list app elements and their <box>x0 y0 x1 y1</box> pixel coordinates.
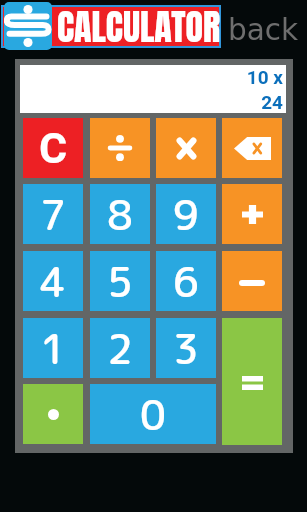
staticText: 0 <box>140 386 166 443</box>
staticText: 10 x <box>246 66 283 88</box>
button[interactable]: 0 <box>90 384 216 444</box>
button[interactable]: Divide <box>90 118 150 178</box>
staticText: 4 <box>40 253 66 310</box>
button[interactable]: 5 <box>90 251 150 311</box>
staticText: 1 <box>40 320 66 377</box>
staticText: CALCULATOR <box>57 0 221 54</box>
staticText: 6 <box>173 253 199 310</box>
staticText: 5 <box>107 253 133 310</box>
button[interactable]: 9 <box>156 184 216 244</box>
button[interactable]: 6 <box>156 251 216 311</box>
staticText: 2 <box>107 320 133 377</box>
button[interactable]: Minus <box>222 251 282 311</box>
button[interactable]: Backspace <box>222 118 282 178</box>
button[interactable]: Multiply <box>156 118 216 178</box>
button[interactable]: 1 <box>23 318 83 378</box>
staticText: C <box>39 123 68 173</box>
staticText: 3 <box>173 320 199 377</box>
button[interactable]: 4 <box>23 251 83 311</box>
staticText: back <box>228 13 299 47</box>
button[interactable]: 8 <box>90 184 150 244</box>
button[interactable]: back <box>228 13 299 47</box>
button[interactable]: Equals <box>222 318 282 445</box>
button[interactable]: Clear <box>23 118 83 178</box>
button[interactable]: App logo <box>4 2 52 50</box>
staticText: 7 <box>40 186 66 243</box>
staticText: 9 <box>173 186 199 243</box>
staticText: 24 <box>261 91 283 113</box>
button[interactable]: 3 <box>156 318 216 378</box>
button[interactable]: 2 <box>90 318 150 378</box>
button[interactable]: Plus <box>222 184 282 244</box>
staticText: 8 <box>107 186 133 243</box>
button[interactable]: 7 <box>23 184 83 244</box>
button[interactable]: Decimal point <box>23 384 83 444</box>
